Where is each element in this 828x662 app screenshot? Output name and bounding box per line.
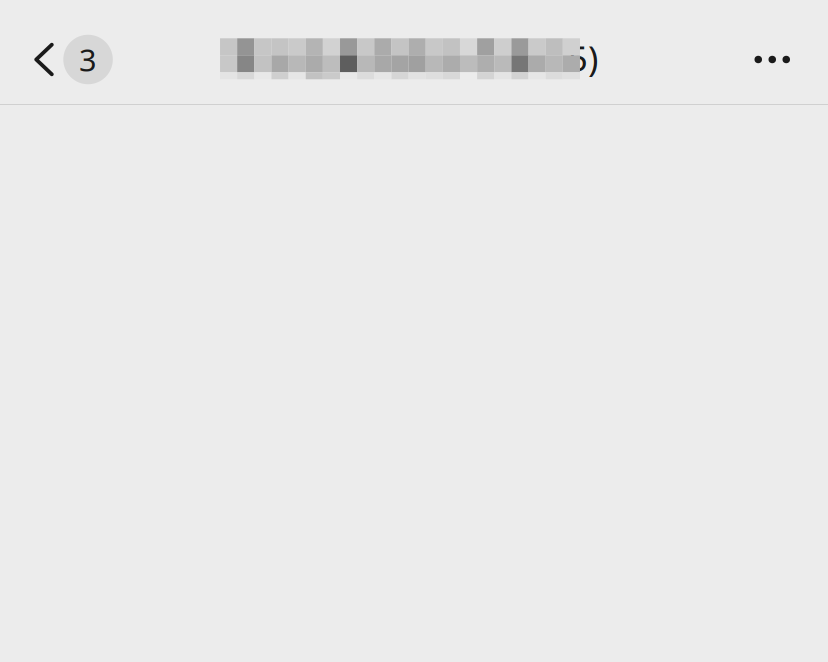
button[interactable]: Conversation title, redacted bbox=[220, 27, 600, 89]
button[interactable]: Back — 3 unread conversations bbox=[0, 21, 123, 98]
button[interactable]: More options bbox=[739, 36, 805, 83]
staticText: 5) bbox=[568, 35, 598, 81]
staticText: 3 bbox=[79, 39, 97, 80]
